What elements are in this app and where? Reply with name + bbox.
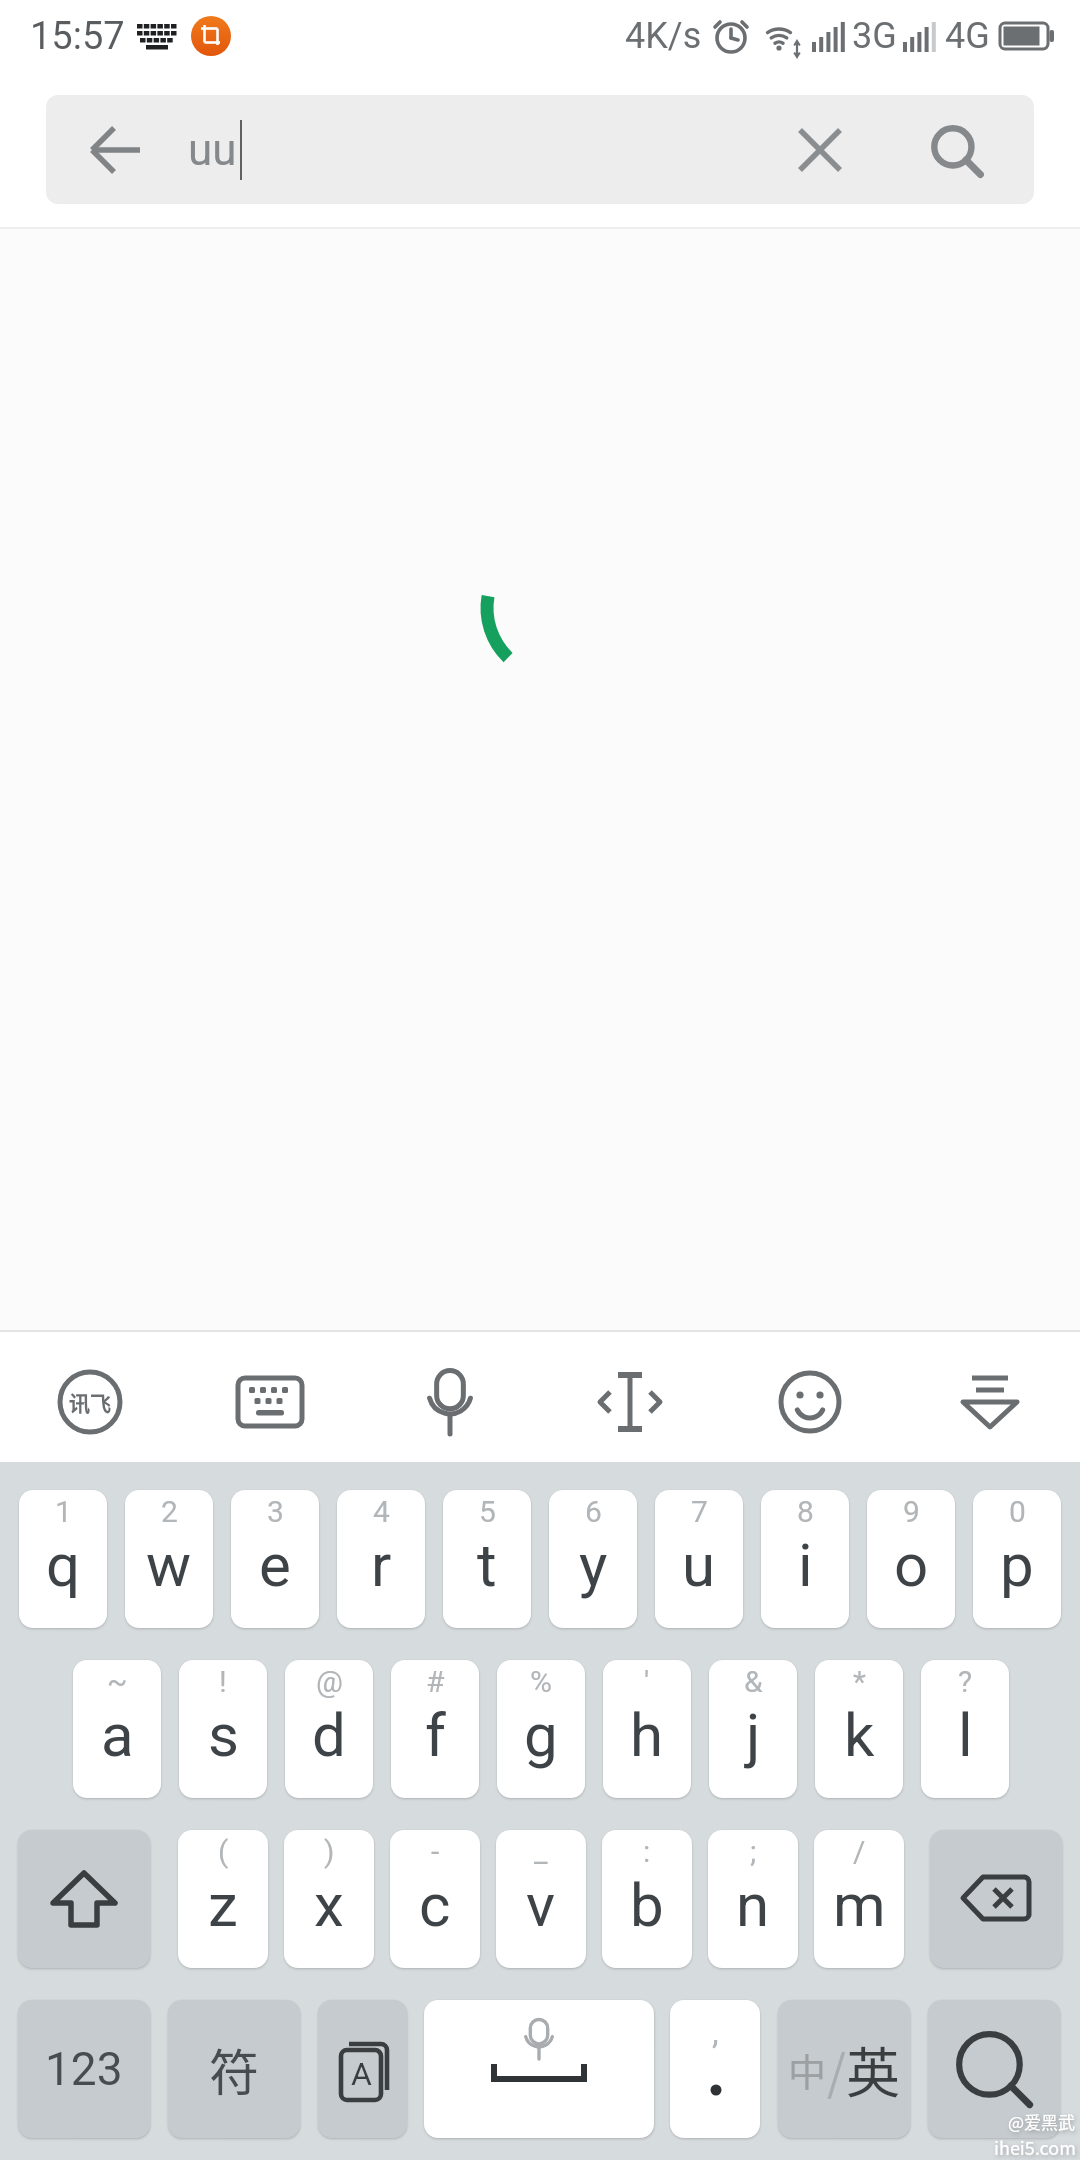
staticText: , — [712, 2012, 719, 2052]
staticText: c — [419, 1870, 451, 1940]
button[interactable]: _ — [496, 1830, 586, 1968]
staticText: a — [101, 1700, 134, 1770]
staticText: r — [371, 1530, 392, 1600]
button[interactable]: 8 — [761, 1490, 849, 1628]
staticText: % — [530, 1664, 552, 1699]
staticText: @ — [316, 1664, 343, 1699]
staticText: : — [643, 1834, 651, 1869]
staticText: 5 — [479, 1494, 496, 1529]
button[interactable] — [798, 128, 842, 172]
button[interactable] — [360, 1332, 540, 1462]
staticText: 3G — [852, 15, 897, 57]
button[interactable]: ? — [921, 1660, 1009, 1798]
button[interactable]: A — [318, 2000, 407, 2138]
button[interactable] — [18, 1830, 150, 1968]
staticText: 7 — [691, 1494, 708, 1529]
button[interactable]: 123 — [18, 2000, 150, 2138]
staticText: ihei5.com — [994, 2134, 1076, 2160]
button[interactable] — [540, 1332, 720, 1462]
staticText: * — [853, 1664, 866, 1699]
staticText: / — [853, 1834, 866, 1869]
button[interactable]: 6 — [549, 1490, 637, 1628]
button[interactable]: # — [391, 1660, 479, 1798]
button[interactable]: uu — [46, 95, 1034, 204]
staticText: j — [746, 1700, 761, 1770]
button[interactable]: 5 — [443, 1490, 531, 1628]
staticText: # — [426, 1664, 445, 1699]
staticText: 中 — [788, 2042, 827, 2097]
staticText: ~ — [107, 1664, 128, 1699]
button[interactable]: ~ — [73, 1660, 161, 1798]
staticText: ) — [324, 1834, 335, 1869]
button[interactable]: 中 — [778, 2000, 910, 2138]
button[interactable]: 符 — [168, 2000, 300, 2138]
button[interactable]: ! — [179, 1660, 267, 1798]
staticText: - — [431, 1834, 440, 1869]
staticText: o — [894, 1530, 929, 1600]
staticText: 123 — [45, 2042, 123, 2096]
staticText: m — [833, 1870, 886, 1940]
staticText: 讯飞 — [69, 1387, 111, 1417]
staticText: q — [46, 1530, 81, 1600]
button[interactable] — [928, 2000, 1060, 2138]
staticText: / — [827, 2034, 846, 2104]
button[interactable]: % — [497, 1660, 585, 1798]
staticText: A — [351, 2055, 372, 2093]
staticText: ; — [750, 1834, 757, 1869]
button[interactable]: : — [602, 1830, 692, 1968]
staticText: i — [798, 1530, 813, 1600]
button[interactable]: , — [670, 2000, 760, 2138]
staticText: g — [524, 1700, 558, 1770]
staticText: l — [958, 1700, 973, 1770]
staticText: 符 — [209, 2033, 259, 2105]
button[interactable]: 4 — [337, 1490, 425, 1628]
staticText: ( — [218, 1834, 229, 1869]
staticText: y — [579, 1530, 608, 1600]
staticText: ? — [958, 1664, 973, 1699]
button[interactable]: ) — [284, 1830, 374, 1968]
button[interactable]: / — [814, 1830, 904, 1968]
button[interactable]: 讯飞 — [0, 1332, 180, 1462]
button[interactable]: * — [815, 1660, 903, 1798]
button[interactable]: & — [709, 1660, 797, 1798]
button[interactable]: 2 — [125, 1490, 213, 1628]
button[interactable] — [180, 1332, 360, 1462]
staticText: 1 — [55, 1494, 72, 1529]
button[interactable] — [900, 1332, 1080, 1462]
staticText: 2 — [161, 1494, 178, 1529]
button[interactable] — [424, 2000, 654, 2138]
staticText: t — [477, 1530, 497, 1600]
staticText: 4 — [373, 1494, 390, 1529]
staticText: & — [744, 1664, 763, 1699]
staticText: 英 — [846, 2030, 900, 2108]
staticText: w — [146, 1530, 192, 1600]
staticText: z — [208, 1870, 238, 1940]
staticText: n — [736, 1870, 770, 1940]
button[interactable]: ( — [178, 1830, 268, 1968]
staticText: s — [208, 1700, 239, 1770]
staticText: 15:57 — [30, 14, 125, 59]
staticText: 9 — [903, 1494, 920, 1529]
button[interactable]: ' — [603, 1660, 691, 1798]
button[interactable]: 0 — [973, 1490, 1061, 1628]
button[interactable]: 9 — [867, 1490, 955, 1628]
staticText: k — [844, 1700, 875, 1770]
staticText: 8 — [797, 1494, 814, 1529]
staticText: 4K/s — [625, 15, 702, 57]
button[interactable] — [90, 124, 142, 176]
staticText: 4G — [945, 15, 990, 57]
staticText: f — [425, 1700, 446, 1770]
button[interactable]: @ — [285, 1660, 373, 1798]
button[interactable]: 1 — [19, 1490, 107, 1628]
button[interactable]: ; — [708, 1830, 798, 1968]
button[interactable] — [720, 1332, 900, 1462]
button[interactable]: - — [390, 1830, 480, 1968]
button[interactable]: 7 — [655, 1490, 743, 1628]
staticText: @爱黑武 — [1008, 2109, 1076, 2134]
staticText: 3 — [267, 1494, 284, 1529]
staticText: p — [1000, 1530, 1034, 1600]
button[interactable]: 3 — [231, 1490, 319, 1628]
staticText: v — [526, 1870, 556, 1940]
button[interactable] — [930, 1830, 1062, 1968]
button[interactable] — [930, 124, 982, 176]
